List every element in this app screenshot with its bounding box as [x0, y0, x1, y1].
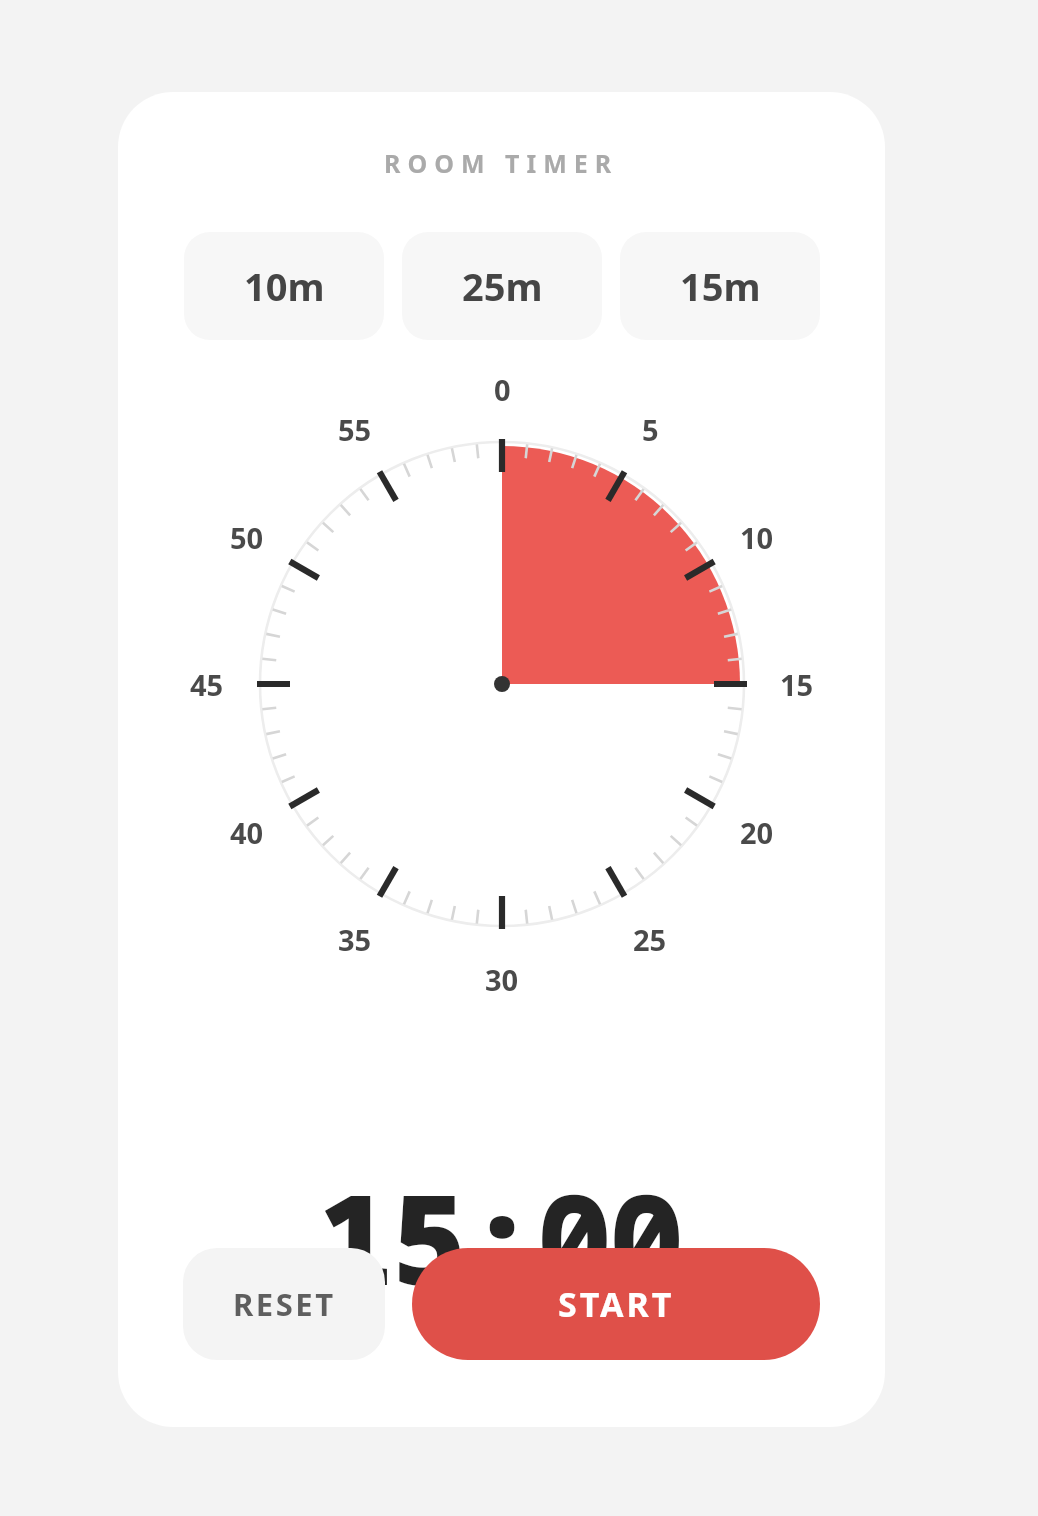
staticText: 10 — [740, 518, 774, 557]
staticText: 45 — [190, 665, 224, 704]
staticText: 0 — [494, 370, 511, 409]
staticText: 15:00 — [320, 1152, 683, 1321]
staticText: ROOM TIMER — [384, 146, 619, 180]
button[interactable]: RESET — [183, 1248, 385, 1360]
staticText: 25m — [462, 260, 543, 312]
staticText: 40 — [230, 813, 264, 852]
staticText: START — [558, 1281, 675, 1327]
staticText: 50 — [230, 518, 264, 557]
staticText: 55 — [338, 410, 372, 449]
staticText: RESET — [233, 1283, 336, 1325]
staticText: 15 — [780, 665, 814, 704]
staticText: 30 — [485, 960, 519, 999]
staticText: 25 — [633, 920, 667, 959]
button[interactable]: 15m — [620, 232, 820, 340]
button[interactable]: START — [412, 1248, 820, 1360]
staticText: 5 — [642, 410, 659, 449]
button[interactable]: 10m — [184, 232, 384, 340]
staticText: 20 — [740, 813, 774, 852]
staticText: 35 — [338, 920, 372, 959]
staticText: 15m — [680, 260, 761, 312]
button[interactable]: Timer dial, 15 minutes — [182, 364, 822, 1004]
button[interactable]: 25m — [402, 232, 602, 340]
staticText: 10m — [244, 260, 325, 312]
